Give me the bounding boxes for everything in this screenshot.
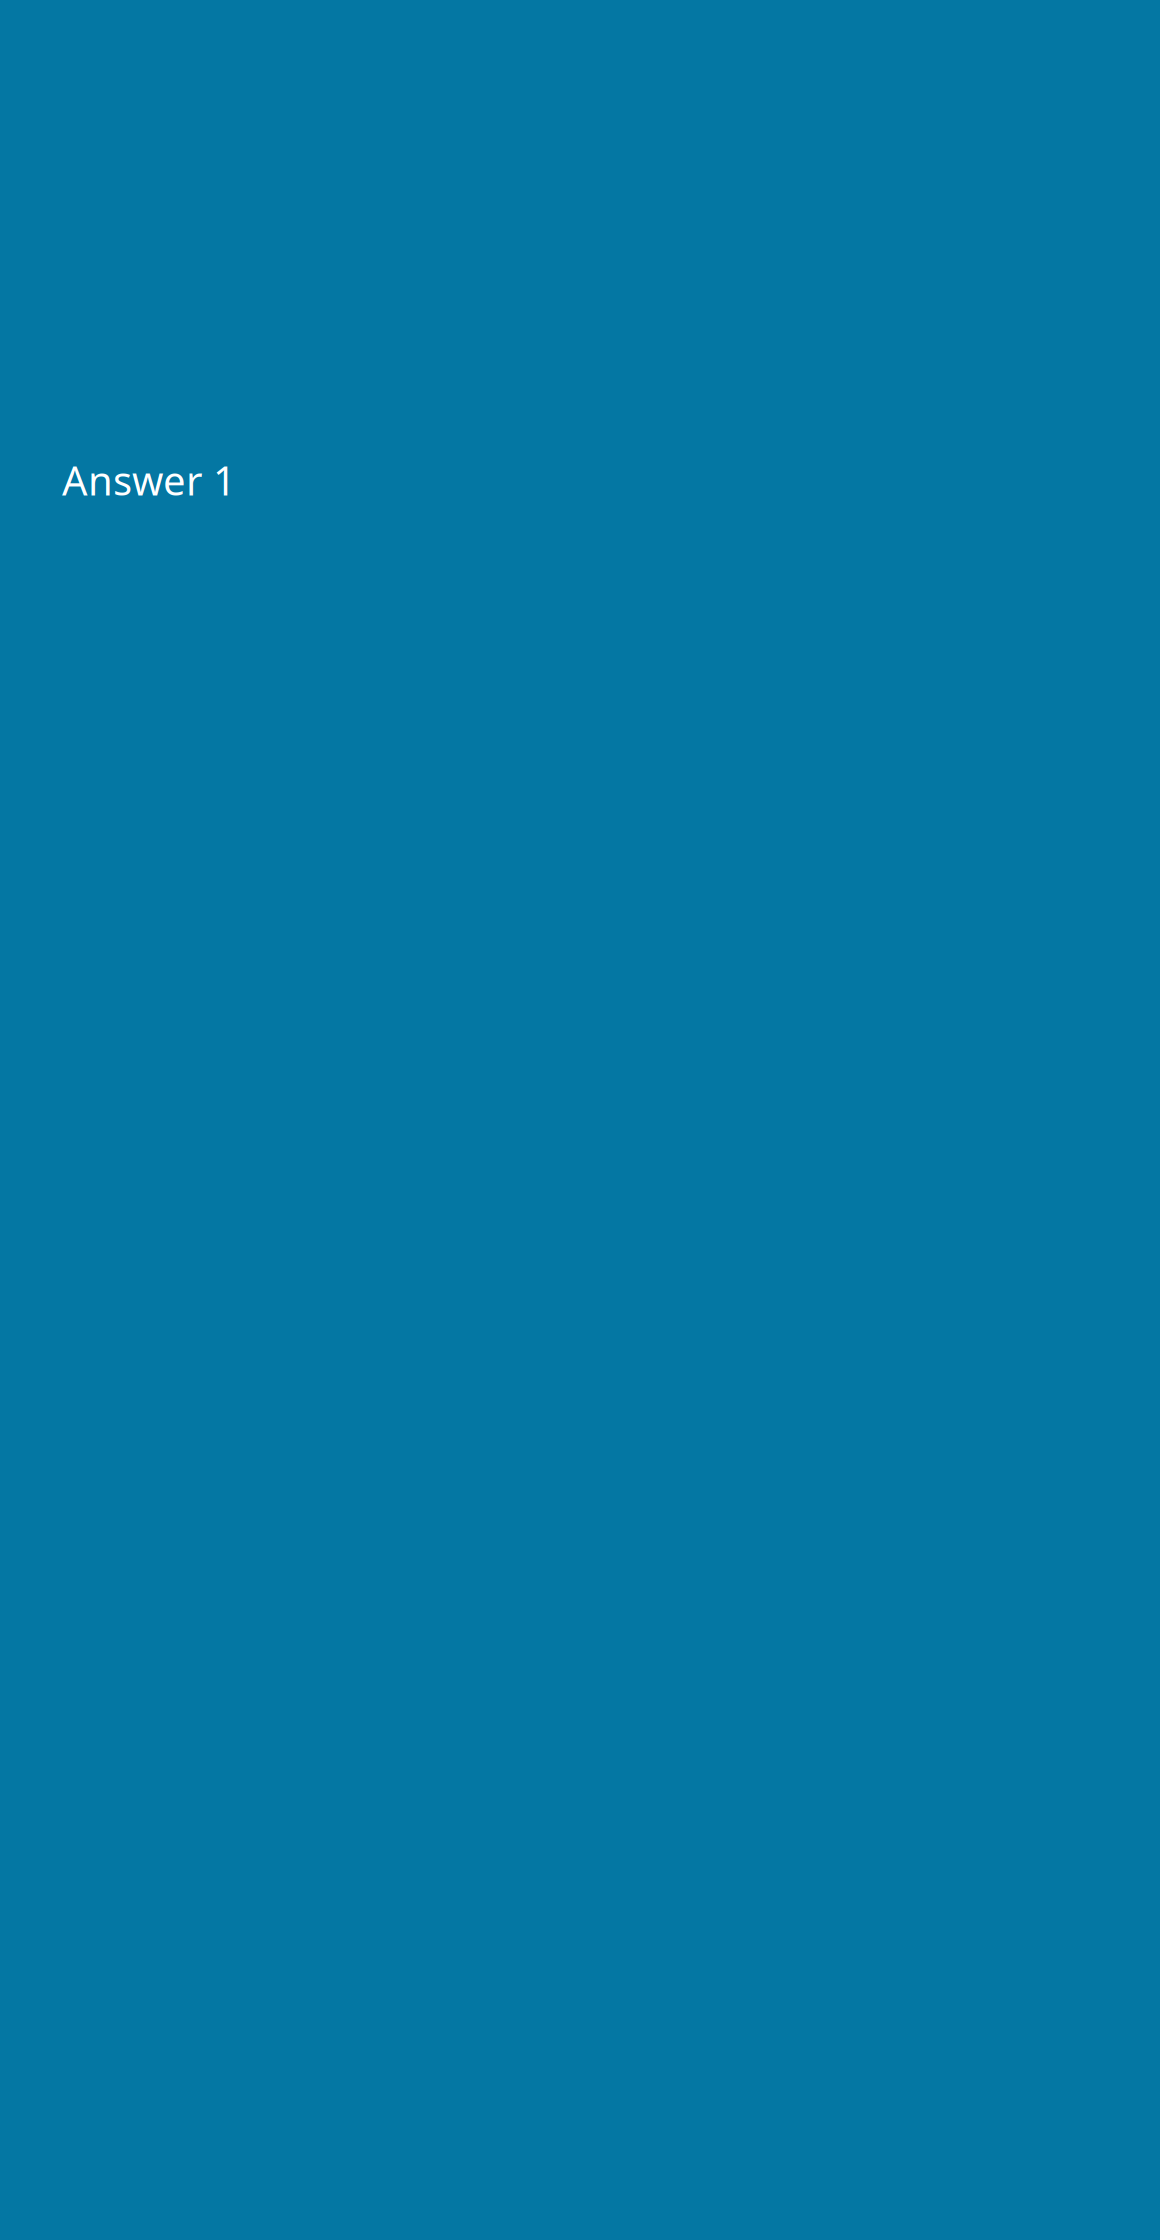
staticText: Answer 1 bbox=[62, 453, 236, 506]
